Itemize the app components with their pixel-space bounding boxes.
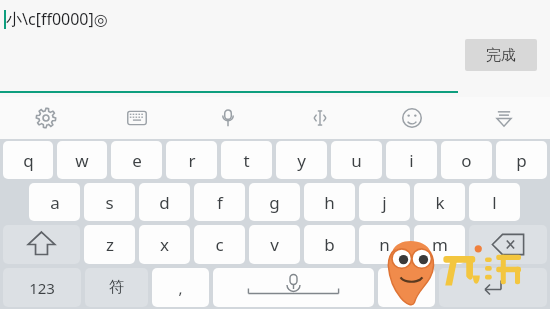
staticText: r [188, 149, 196, 172]
staticText: s [105, 191, 114, 214]
button[interactable]: u [331, 141, 382, 179]
staticText: z [106, 233, 114, 256]
button[interactable]: i [386, 141, 437, 179]
staticText: p [516, 149, 527, 172]
button[interactable]: Emoji [366, 97, 458, 139]
button[interactable]: 完成 [465, 39, 537, 71]
staticText: w [75, 149, 89, 172]
button[interactable]: a [29, 183, 80, 221]
button[interactable]: 符 [85, 268, 148, 307]
staticText: n [379, 233, 390, 256]
staticText: i [409, 149, 414, 172]
button[interactable]: w [57, 141, 107, 179]
button[interactable]: Keyboard layout [91, 97, 182, 139]
staticText: l [492, 191, 497, 214]
button[interactable]: Move cursor [274, 97, 366, 139]
button[interactable]: h [304, 183, 355, 221]
staticText: v [270, 233, 279, 256]
staticText: c [215, 233, 224, 256]
staticText: e [132, 149, 142, 172]
button[interactable]: j [359, 183, 410, 221]
staticText: d [159, 191, 170, 214]
staticText: k [435, 191, 445, 214]
staticText: 完成 [486, 46, 516, 65]
button[interactable]: l [469, 183, 520, 221]
staticText: 123 [29, 278, 55, 298]
button[interactable]: b [304, 225, 355, 264]
button[interactable]: Shift [3, 225, 80, 264]
button[interactable]: s [84, 183, 135, 221]
button[interactable]: g [249, 183, 300, 221]
staticText: o [461, 149, 472, 172]
staticText: b [324, 233, 335, 256]
staticText: f [217, 191, 223, 214]
staticText: 小\c[ff0000]◎ [6, 8, 108, 30]
button[interactable]: Space [213, 268, 374, 307]
staticText: x [160, 233, 169, 256]
staticText: t [243, 149, 250, 172]
button[interactable]: Settings [0, 97, 91, 139]
staticText: u [351, 149, 362, 172]
button[interactable]: k [414, 183, 465, 221]
button[interactable]: c [194, 225, 245, 264]
staticText: q [23, 149, 34, 172]
staticText: a [50, 191, 60, 214]
button[interactable]: e [111, 141, 162, 179]
button[interactable]: Enter [439, 268, 547, 307]
button[interactable]: p [496, 141, 547, 179]
button[interactable]: . [378, 268, 435, 307]
staticText: j [382, 191, 387, 214]
button[interactable]: Backspace [469, 225, 547, 264]
button[interactable]: o [441, 141, 492, 179]
button[interactable]: q [3, 141, 53, 179]
button[interactable]: n [359, 225, 410, 264]
button[interactable]: Voice input [182, 97, 274, 139]
button[interactable]: z [84, 225, 135, 264]
button[interactable]: r [166, 141, 217, 179]
staticText: y [297, 149, 306, 172]
staticText: m [432, 233, 448, 256]
staticText: . [404, 278, 409, 298]
staticText: , [178, 278, 183, 298]
staticText: 符 [109, 278, 124, 297]
button[interactable]: v [249, 225, 300, 264]
button[interactable]: , [152, 268, 209, 307]
button[interactable]: y [276, 141, 327, 179]
button[interactable]: 123 [3, 268, 81, 307]
staticText: h [324, 191, 335, 214]
button[interactable]: t [221, 141, 272, 179]
button[interactable]: x [139, 225, 190, 264]
button[interactable]: Hide keyboard [458, 97, 550, 139]
button[interactable]: m [414, 225, 465, 264]
staticText: g [269, 191, 280, 214]
button[interactable]: d [139, 183, 190, 221]
button[interactable]: f [194, 183, 245, 221]
